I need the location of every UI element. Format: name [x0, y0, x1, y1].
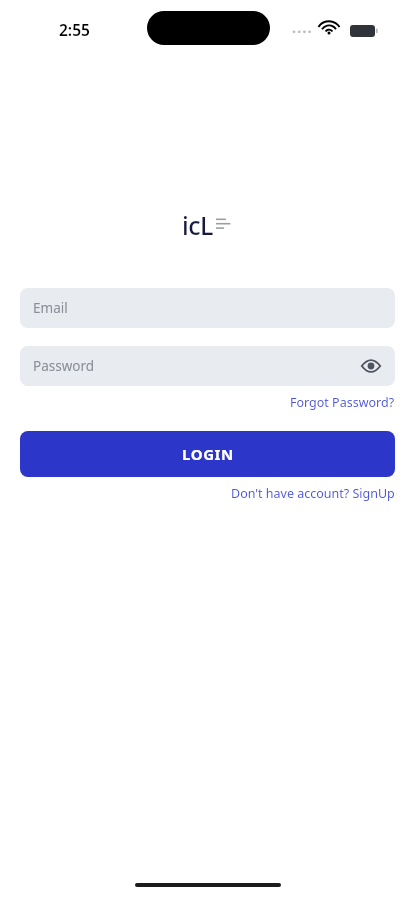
- staticText: Password: [33, 357, 95, 375]
- button[interactable]: LOGIN: [20, 431, 395, 477]
- staticText: icL: [182, 208, 213, 242]
- button[interactable]: Password: [20, 346, 395, 386]
- button[interactable]: Email: [20, 288, 395, 328]
- button[interactable]: Forgot Password?: [290, 393, 395, 412]
- button[interactable]: Show password: [357, 352, 385, 380]
- staticText: 2:55: [59, 19, 90, 40]
- staticText: Email: [33, 299, 68, 317]
- button[interactable]: Don't have account? SignUp: [231, 484, 395, 503]
- staticText: Forgot Password?: [290, 394, 395, 411]
- staticText: Don't have account? SignUp: [231, 485, 395, 502]
- staticText: LOGIN: [182, 444, 234, 464]
